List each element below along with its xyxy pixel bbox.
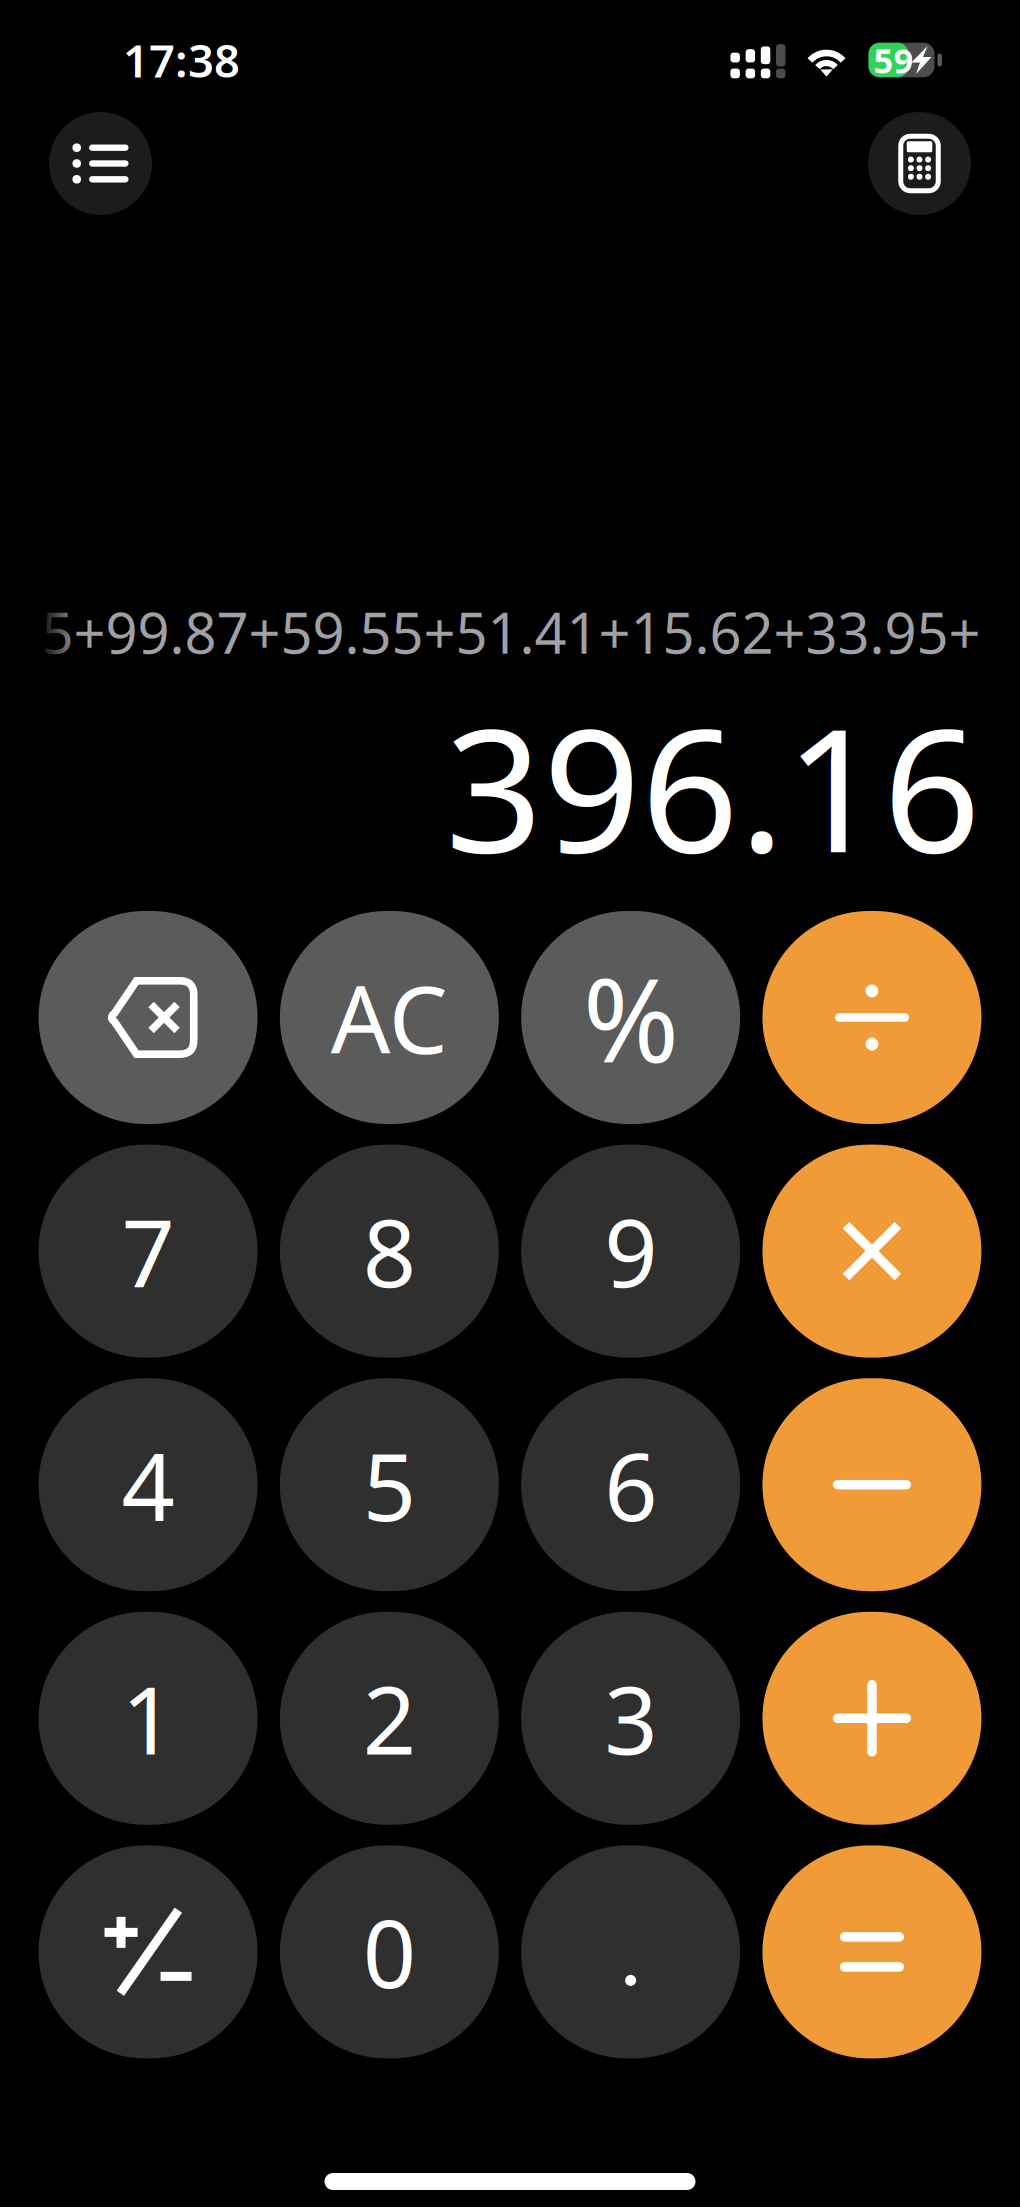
button[interactable] (280, 911, 499, 1124)
button[interactable]: 6 (521, 1378, 740, 1591)
staticText: 7 (122, 1189, 175, 1313)
button[interactable]: 0 (280, 1845, 499, 2058)
button[interactable]: Add (762, 1612, 981, 1825)
button[interactable]: Subtract (762, 1378, 981, 1591)
staticText: % (583, 940, 679, 1094)
button[interactable]: Equals (762, 1845, 981, 2058)
staticText: 3 (604, 1656, 657, 1780)
staticText: 2 (363, 1656, 416, 1780)
staticText: 6 (604, 1423, 657, 1547)
staticText: 396.16 (445, 673, 981, 899)
staticText: 0 (363, 1890, 416, 2014)
staticText: 59 (873, 37, 913, 83)
staticText: 1 (122, 1656, 175, 1780)
button[interactable]: 7 (39, 1145, 258, 1358)
staticText: 5 (363, 1423, 416, 1547)
button[interactable]: Toggle sign (39, 1845, 258, 2058)
staticText: 8 (363, 1189, 416, 1313)
staticText: 9 (604, 1189, 657, 1313)
button[interactable]: 8 (280, 1145, 499, 1358)
button[interactable]: 1 (39, 1612, 258, 1825)
button[interactable]: Decimal point (521, 1845, 740, 2058)
button[interactable]: Delete (39, 911, 258, 1124)
staticText: 4 (122, 1423, 175, 1547)
button[interactable]: Calculator (868, 112, 971, 215)
button[interactable]: Divide (762, 911, 981, 1124)
button[interactable] (521, 911, 740, 1124)
button[interactable]: 9 (521, 1145, 740, 1358)
staticText: AC (331, 955, 448, 1079)
button[interactable]: 4 (39, 1378, 258, 1591)
button[interactable]: 3 (521, 1612, 740, 1825)
button[interactable]: 5 (280, 1378, 499, 1591)
staticText: 5+99.87+59.55+51.41+15.62+33.95+ (41, 595, 980, 669)
button[interactable]: History (49, 112, 152, 215)
button[interactable]: Multiply (762, 1145, 981, 1358)
staticText: 17:38 (123, 30, 240, 90)
button[interactable]: 2 (280, 1612, 499, 1825)
